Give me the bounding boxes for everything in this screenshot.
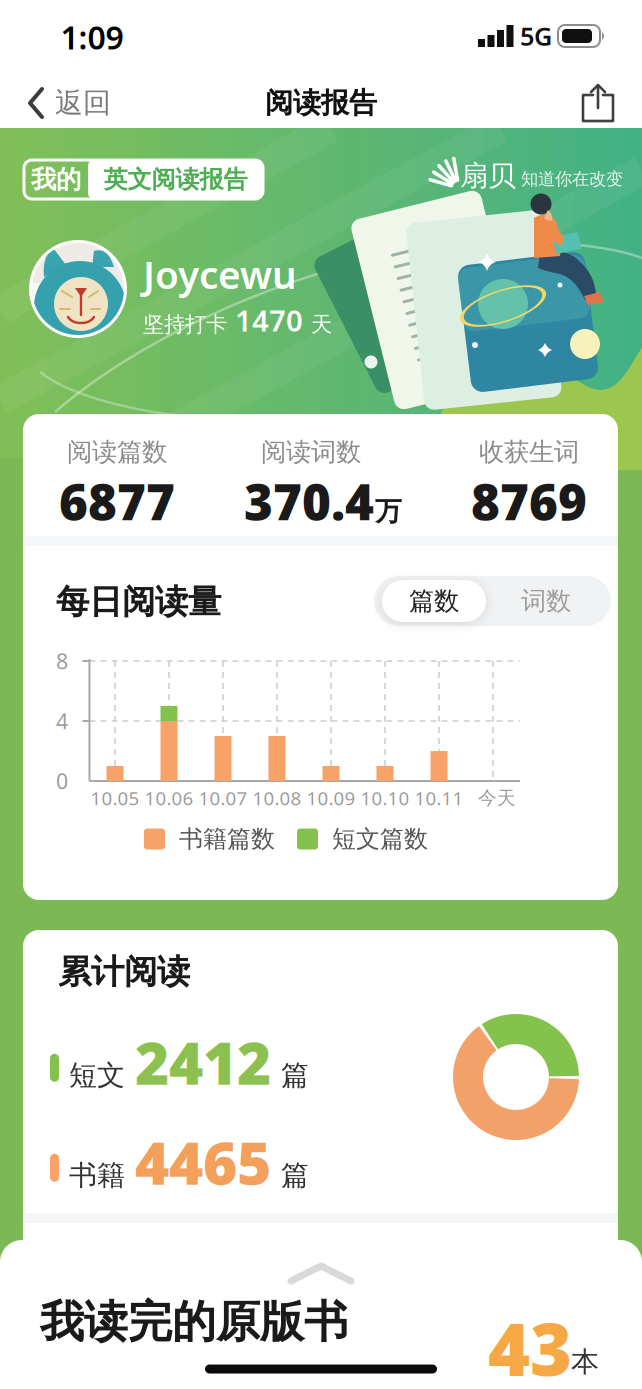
staticText: 8 <box>56 647 68 675</box>
staticText: 累计阅读 <box>58 951 190 992</box>
staticText: 6877 <box>59 468 175 534</box>
staticText: 每日阅读量 <box>56 581 221 622</box>
staticText: 返回 <box>55 86 111 120</box>
staticText: 阅读报告 <box>265 86 377 120</box>
staticText: 短文篇数 <box>332 824 428 854</box>
staticText: 篇 <box>281 1158 309 1193</box>
staticText: 10.08 <box>252 786 301 810</box>
staticText: 1:09 <box>60 16 123 58</box>
staticText: 10.06 <box>144 786 193 810</box>
button[interactable]: 篇数 <box>382 580 486 622</box>
staticText: 天 <box>311 311 332 337</box>
staticText: Joycewu <box>143 248 297 300</box>
staticText: 英文阅读报告 <box>103 165 247 194</box>
staticText: 篇 <box>281 1058 309 1093</box>
staticText: 收获生词 <box>479 436 579 467</box>
staticText: 2412 <box>135 1023 271 1101</box>
staticText: 阅读词数 <box>261 436 361 467</box>
staticText: 10.07 <box>198 786 247 810</box>
staticText: 4 <box>56 707 68 735</box>
staticText: 370.4 <box>244 468 374 534</box>
staticText: 知道你在改变 <box>521 168 623 190</box>
staticText: 书籍篇数 <box>179 824 275 854</box>
staticText: 坚持打卡 <box>143 311 227 337</box>
staticText: 10.10 <box>360 786 409 810</box>
staticText: 8769 <box>471 468 587 534</box>
staticText: 书籍 <box>69 1158 125 1193</box>
staticText: 0 <box>56 767 68 795</box>
staticText: 扇贝 <box>460 159 516 193</box>
staticText: 10.11 <box>414 786 463 810</box>
staticText: 1470 <box>235 300 303 339</box>
staticText: 我读完的原版书 <box>40 1295 348 1349</box>
staticText: 5G <box>520 19 552 53</box>
staticText: 10.05 <box>90 786 139 810</box>
staticText: 短文 <box>69 1058 125 1093</box>
button[interactable] <box>581 83 615 123</box>
button[interactable]: 返回 <box>28 81 138 125</box>
button[interactable] <box>0 0 642 1389</box>
staticText: 词数 <box>521 585 571 616</box>
staticText: 万 <box>375 495 402 528</box>
staticText: 我的 <box>31 164 81 195</box>
staticText: 本 <box>571 1345 599 1379</box>
button[interactable]: 我的 <box>24 160 263 199</box>
staticText: 4465 <box>135 1123 271 1201</box>
staticText: 篇数 <box>409 585 459 616</box>
staticText: 10.09 <box>306 786 355 810</box>
staticText: 43 <box>488 1300 572 1389</box>
staticText: 今天 <box>478 786 516 809</box>
staticText: 阅读篇数 <box>67 436 167 467</box>
button[interactable]: 词数 <box>494 580 598 622</box>
